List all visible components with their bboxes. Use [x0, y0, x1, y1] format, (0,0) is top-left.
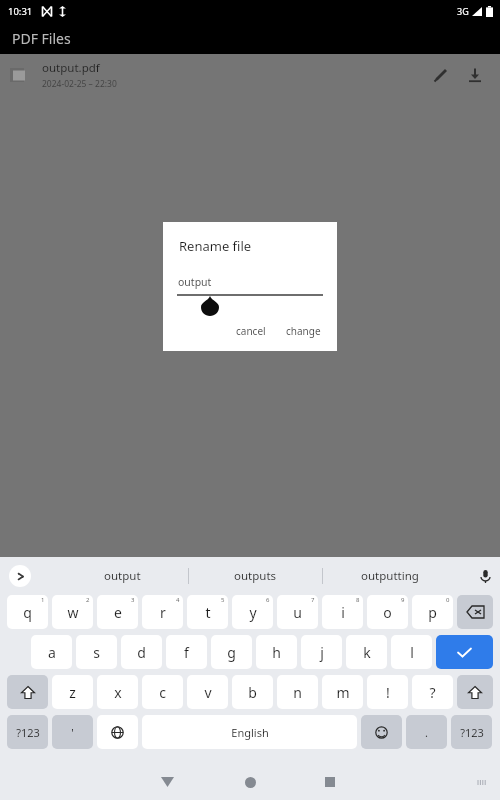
staticText: q [23, 603, 32, 622]
button[interactable]: Language [97, 715, 138, 749]
button[interactable]: Shift [7, 675, 48, 709]
button[interactable]: a [31, 635, 72, 669]
button[interactable]: x [97, 675, 138, 709]
button[interactable]: Back [152, 767, 182, 797]
button[interactable]: q [7, 595, 48, 629]
button[interactable]: Voice input [470, 561, 500, 591]
staticText: m [336, 683, 350, 702]
staticText: x [114, 683, 122, 702]
staticText: 4 [176, 596, 180, 604]
staticText: ! [386, 683, 390, 702]
staticText: g [227, 643, 236, 662]
button[interactable]: s [76, 635, 117, 669]
button[interactable]: ?123 [7, 715, 48, 749]
staticText: ? [429, 683, 436, 702]
button[interactable]: cancel [231, 320, 271, 342]
button[interactable]: z [52, 675, 93, 709]
staticText: p [428, 603, 437, 622]
staticText: h [272, 643, 281, 662]
staticText: outputs [234, 568, 277, 584]
button[interactable]: Expand suggestions [9, 565, 31, 587]
button[interactable]: c [142, 675, 183, 709]
button[interactable]: t [187, 595, 228, 629]
staticText: ' [71, 725, 74, 740]
staticText: j [320, 643, 324, 662]
button[interactable]: outputs [189, 557, 322, 595]
button[interactable]: . [406, 715, 447, 749]
button[interactable]: output [56, 557, 188, 595]
staticText: l [410, 643, 414, 662]
staticText: y [249, 603, 257, 622]
button[interactable]: j [301, 635, 342, 669]
button[interactable]: i [322, 595, 363, 629]
staticText: 1 [41, 596, 45, 604]
button[interactable]: ?123 [451, 715, 492, 749]
staticText: output [178, 275, 212, 289]
button[interactable]: y [232, 595, 273, 629]
button[interactable]: f [166, 635, 207, 669]
staticText: English [231, 725, 269, 740]
button[interactable]: w [52, 595, 93, 629]
staticText: u [293, 603, 302, 622]
staticText: 8 [356, 596, 360, 604]
staticText: a [48, 643, 56, 662]
staticText: 10:31 [8, 5, 33, 18]
button[interactable]: outputting [323, 557, 456, 595]
staticText: s [93, 643, 100, 662]
staticText: e [114, 603, 122, 622]
button[interactable]: Keyboard switcher [470, 771, 492, 793]
button[interactable]: n [277, 675, 318, 709]
button[interactable]: Emoji [361, 715, 402, 749]
button[interactable]: ' [52, 715, 93, 749]
button[interactable]: Enter [436, 635, 493, 669]
staticText: ?123 [460, 725, 484, 740]
staticText: b [248, 683, 257, 702]
button[interactable]: k [346, 635, 387, 669]
staticText: w [67, 603, 79, 622]
staticText: r [160, 603, 166, 622]
button[interactable]: l [391, 635, 432, 669]
staticText: output [104, 568, 141, 584]
button[interactable]: Rename [424, 58, 458, 92]
staticText: c [159, 683, 166, 702]
button[interactable]: h [256, 635, 297, 669]
button[interactable]: o [367, 595, 408, 629]
button[interactable]: Shift right [457, 675, 493, 709]
button[interactable]: u [277, 595, 318, 629]
staticText: 0 [446, 596, 450, 604]
staticText: v [204, 683, 212, 702]
button[interactable]: ? [412, 675, 453, 709]
staticText: i [341, 603, 345, 622]
staticText: 5 [221, 596, 225, 604]
button[interactable]: v [187, 675, 228, 709]
staticText: z [69, 683, 76, 702]
button[interactable]: Recents [315, 767, 345, 797]
button[interactable]: ! [367, 675, 408, 709]
staticText: f [184, 643, 189, 662]
staticText: 7 [311, 596, 315, 604]
button[interactable]: r [142, 595, 183, 629]
button[interactable]: Backspace [457, 595, 493, 629]
staticText: n [293, 683, 302, 702]
staticText: Rename file [179, 237, 252, 255]
button[interactable]: b [232, 675, 273, 709]
staticText: change [286, 324, 321, 338]
staticText: ?123 [16, 725, 40, 740]
button[interactable]: Home [235, 767, 265, 797]
button[interactable]: e [97, 595, 138, 629]
button[interactable]: change [281, 320, 326, 342]
button[interactable]: m [322, 675, 363, 709]
staticText: output.pdf [42, 60, 100, 76]
staticText: 3G [457, 5, 469, 17]
button[interactable]: output.pdf [0, 54, 500, 96]
button[interactable]: Download [458, 58, 492, 92]
staticText: outputting [361, 568, 419, 584]
staticText: 2 [86, 596, 90, 604]
button[interactable]: English [142, 715, 357, 749]
staticText: 3 [131, 596, 135, 604]
button[interactable]: g [211, 635, 252, 669]
staticText: o [383, 603, 392, 622]
staticText: 2024-02-25 – 22:30 [42, 78, 117, 90]
button[interactable]: d [121, 635, 162, 669]
button[interactable]: p [412, 595, 453, 629]
